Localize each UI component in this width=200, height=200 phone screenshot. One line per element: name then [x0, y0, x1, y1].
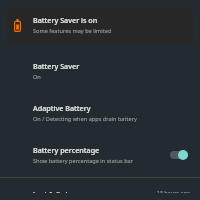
button[interactable]: Battery percentage toggle	[170, 149, 190, 161]
button[interactable]: Battery Saver is on	[7, 7, 193, 44]
staticText: Last full charge	[33, 189, 86, 193]
staticText: On / Detecting when apps drain battery	[33, 115, 137, 123]
button[interactable]: Battery percentage	[0, 138, 200, 172]
staticText: Adaptive Battery	[33, 103, 91, 113]
button[interactable]: Last full charge	[0, 182, 200, 200]
button[interactable]: Adaptive Battery	[0, 96, 200, 130]
button[interactable]: Battery Saver	[0, 54, 200, 88]
staticText: Show battery percentage in status bar	[33, 157, 134, 165]
staticText: 13 hours ago	[156, 189, 190, 193]
staticText: Some features may be limited	[33, 27, 112, 35]
staticText: Battery Saver is on	[33, 15, 98, 25]
staticText: On	[33, 73, 41, 81]
staticText: Battery Saver	[33, 61, 80, 71]
staticText: Battery percentage	[33, 145, 100, 155]
